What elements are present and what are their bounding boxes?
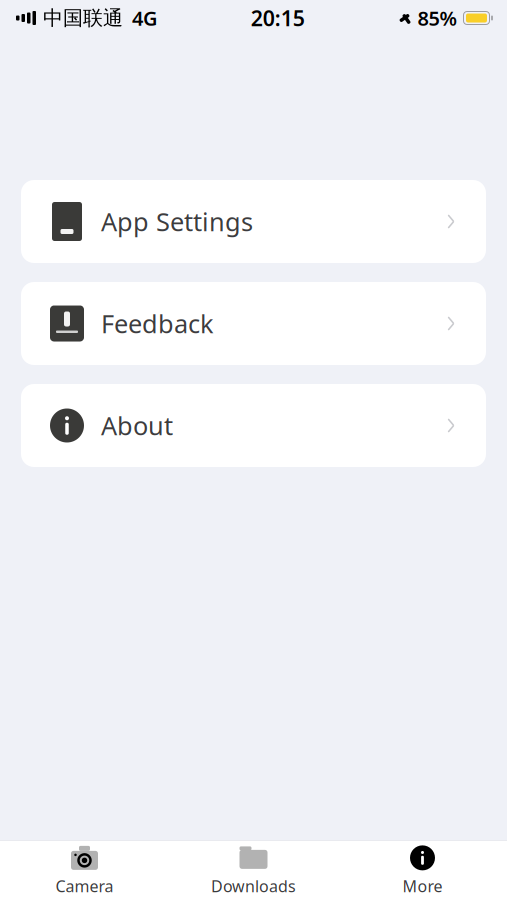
button[interactable]: Camera <box>0 841 169 900</box>
staticText: More <box>402 875 442 897</box>
button[interactable]: About <box>21 384 486 467</box>
staticText: Camera <box>55 875 113 897</box>
staticText: App Settings <box>101 205 253 238</box>
button[interactable]: Feedback <box>21 282 486 365</box>
button[interactable]: Downloads <box>169 841 338 900</box>
button[interactable]: App Settings <box>21 180 486 263</box>
staticText: Downloads <box>211 875 296 897</box>
staticText: 4G <box>132 5 158 31</box>
staticText: 20:15 <box>251 4 305 32</box>
button[interactable]: More <box>338 841 507 900</box>
staticText: About <box>101 409 173 442</box>
staticText: 85% <box>417 5 457 31</box>
staticText: 中国联通 <box>43 6 123 30</box>
staticText: Feedback <box>101 307 214 340</box>
